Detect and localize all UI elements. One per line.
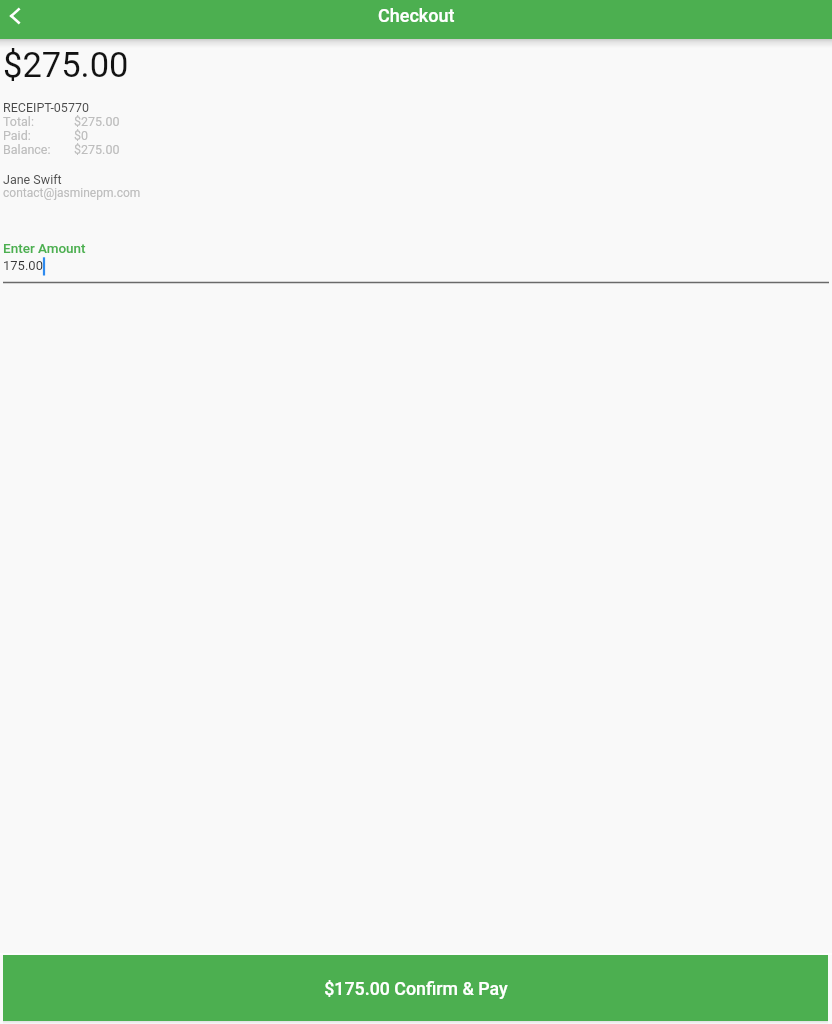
staticText: $275.00 (74, 114, 120, 129)
staticText: RECEIPT-05770 (3, 100, 89, 115)
staticText: Jane Swift (3, 172, 62, 187)
staticText: Paid: (3, 128, 31, 143)
staticText: Total: (3, 114, 34, 129)
staticText: $275.00 (3, 45, 129, 85)
staticText: contact@jasminepm.com (3, 186, 141, 200)
staticText: $275.00 (74, 142, 120, 157)
button[interactable]: Back (0, 0, 30, 32)
staticText: Balance: (3, 142, 51, 157)
staticText: Checkout (378, 5, 455, 26)
button[interactable]: Enter Amount (3, 238, 829, 286)
staticText: $0 (74, 128, 89, 143)
staticText: $175.00 Confirm & Pay (324, 978, 508, 999)
staticText: 175.00 (3, 258, 43, 273)
staticText: Enter Amount (3, 240, 86, 256)
button[interactable]: $175.00 Confirm & Pay (3, 955, 828, 1021)
